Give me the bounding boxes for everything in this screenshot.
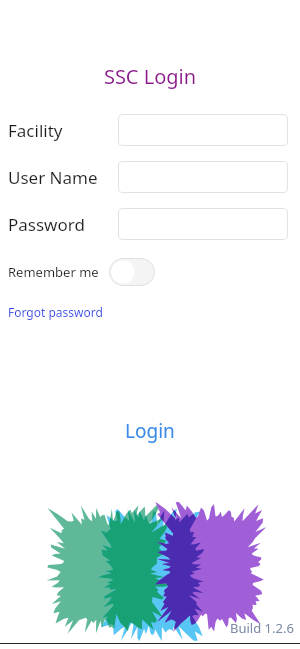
button[interactable]: Remember me bbox=[8, 258, 155, 286]
button[interactable]: Forgot password bbox=[8, 304, 103, 320]
staticText: Login bbox=[125, 418, 175, 444]
staticText: Remember me bbox=[8, 263, 99, 281]
button[interactable] bbox=[118, 161, 288, 193]
staticText: Build 1.2.6 bbox=[230, 619, 294, 637]
staticText: SSC Login bbox=[0, 63, 300, 90]
staticText: Password bbox=[8, 213, 85, 236]
button[interactable] bbox=[118, 114, 288, 146]
staticText: User Name bbox=[8, 166, 98, 189]
other: Remember me toggle bbox=[109, 258, 155, 286]
button[interactable] bbox=[118, 208, 288, 240]
staticText: Forgot password bbox=[8, 304, 103, 320]
button[interactable]: Login bbox=[109, 412, 191, 450]
staticText: Facility bbox=[8, 119, 63, 142]
